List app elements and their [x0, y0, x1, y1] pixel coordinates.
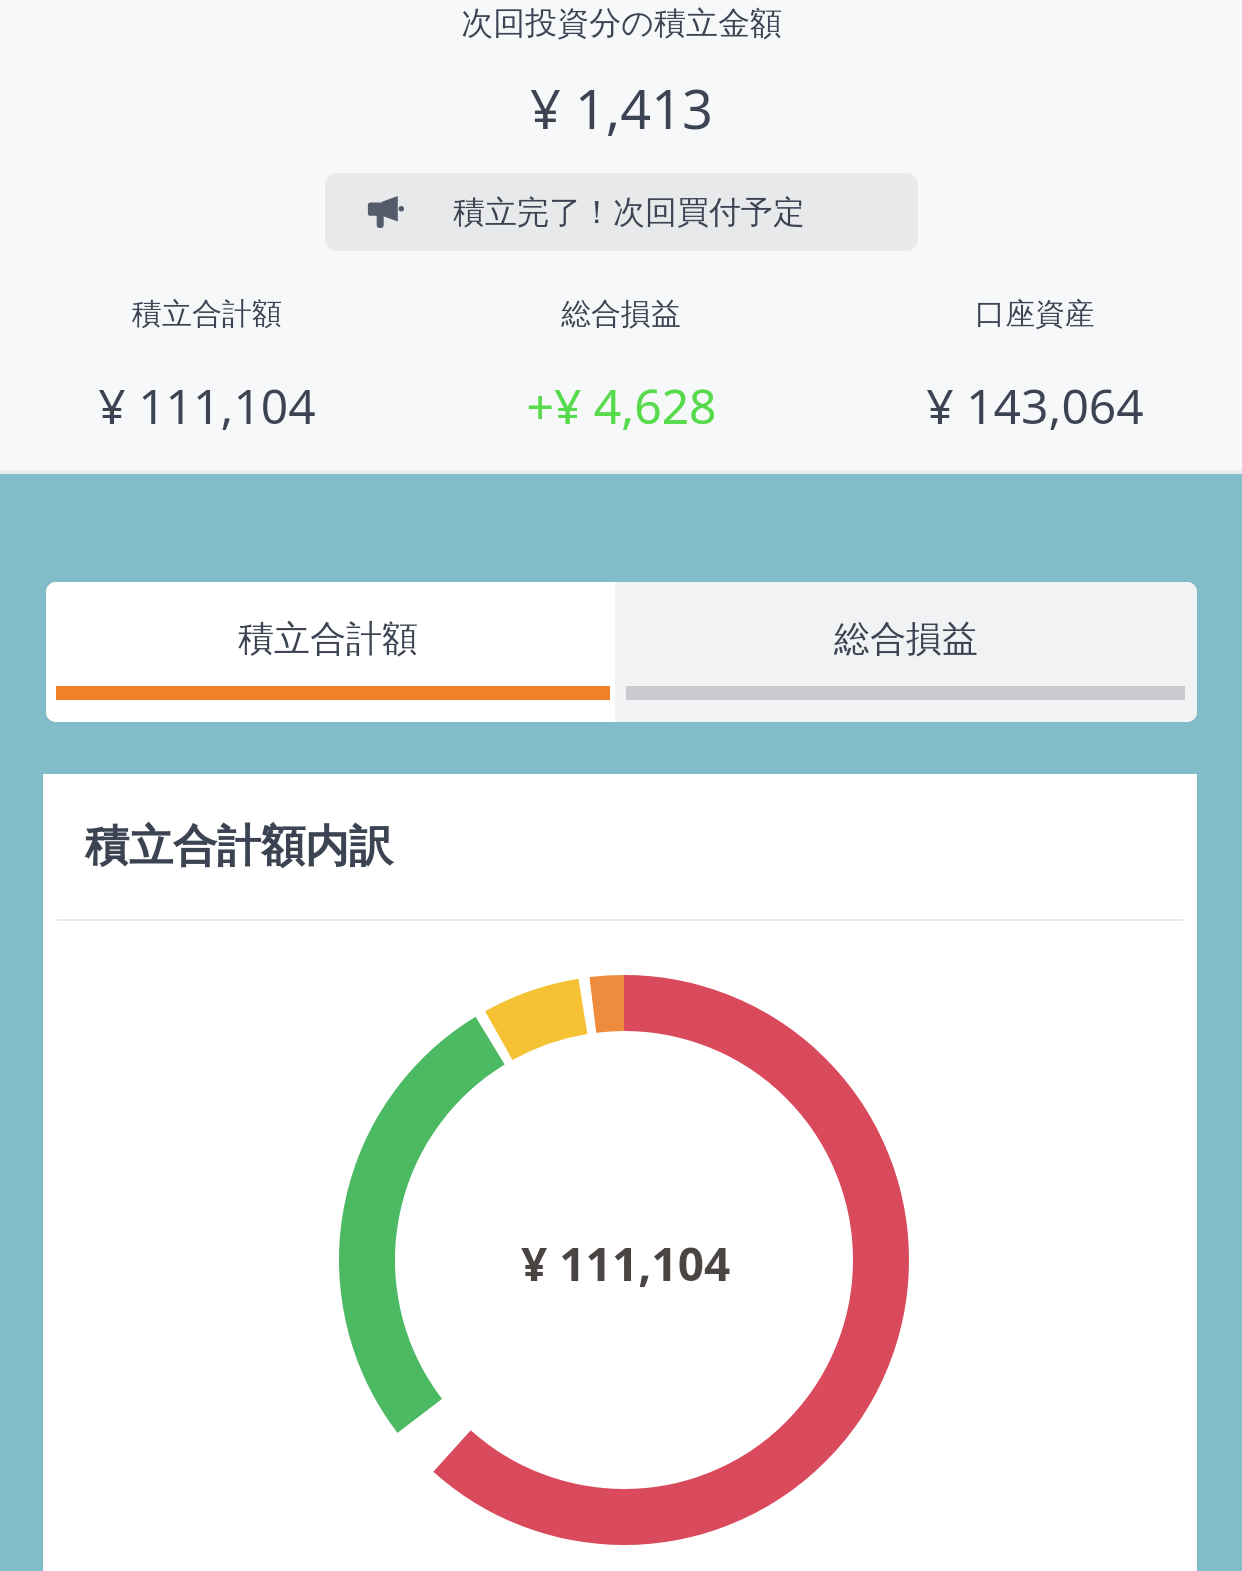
button[interactable]: お知らせ [325, 173, 918, 251]
staticText: ¥ 111,104 [521, 1232, 731, 1295]
staticText: 積立合計額内訳 [85, 819, 393, 874]
staticText: 積立完了！次回買付予定 [453, 192, 805, 232]
staticText: 積立合計額 [132, 295, 282, 333]
button[interactable]: 口座資産 [828, 295, 1242, 438]
button[interactable]: 総合損益 [615, 582, 1197, 722]
staticText: 次回投資分の積立金額 [461, 3, 782, 43]
button[interactable]: 積立合計額 [0, 295, 414, 438]
staticText: ¥ 111,104 [98, 373, 316, 438]
other: お知らせ [367, 196, 411, 228]
staticText: 口座資産 [975, 295, 1095, 333]
staticText: 総合損益 [561, 295, 681, 333]
staticText: 総合損益 [834, 616, 978, 661]
staticText: +¥ 4,628 [526, 373, 717, 438]
button[interactable]: 積立合計額 [46, 582, 610, 722]
button[interactable]: 総合損益 [414, 295, 828, 438]
staticText: 積立合計額 [238, 616, 418, 661]
staticText: ¥ 143,064 [926, 373, 1144, 438]
staticText: ¥ 1,413 [530, 71, 713, 145]
